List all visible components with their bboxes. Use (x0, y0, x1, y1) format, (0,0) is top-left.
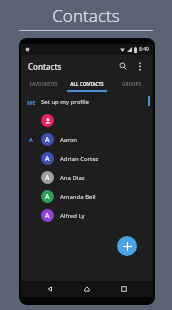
staticText: Contacts (52, 4, 120, 27)
staticText: ALL CONTACTS (70, 81, 104, 87)
staticText: Contacts (28, 61, 62, 72)
staticText: Alfred Ly (60, 212, 85, 220)
staticText: Amanda Bell (60, 193, 96, 201)
staticText: 8:49 (139, 46, 149, 53)
staticText: FAVOURITES (29, 81, 58, 87)
button[interactable]: A (21, 149, 153, 168)
button[interactable]: Back (42, 281, 58, 297)
staticText: A (45, 211, 50, 221)
button[interactable]: FAVOURITES (21, 77, 65, 90)
button[interactable]: GROUPS (109, 77, 153, 90)
button[interactable]: More options (132, 58, 148, 74)
button[interactable]: ALL CONTACTS (65, 77, 109, 90)
button[interactable]: Recent apps (116, 281, 132, 297)
button[interactable]: A (21, 187, 153, 206)
staticText: A (29, 136, 33, 143)
staticText: A (45, 192, 50, 202)
button[interactable]: A (21, 130, 153, 149)
staticText: A (45, 173, 50, 183)
staticText: ME (27, 99, 36, 106)
staticText: GROUPS (122, 81, 141, 87)
button[interactable]: Home (79, 281, 95, 297)
button[interactable]: A (21, 168, 153, 187)
staticText: Adrian Cortez (60, 155, 99, 163)
button[interactable]: ME (21, 93, 153, 111)
button[interactable]: Add contact (117, 236, 137, 256)
staticText: Set up my profile (41, 98, 89, 106)
button[interactable]: A (21, 206, 153, 225)
staticText: Aaron (60, 136, 77, 144)
staticText: A (45, 135, 50, 145)
staticText: A (45, 154, 50, 164)
button[interactable]: Search (115, 58, 131, 74)
staticText: Ana Diaz (60, 174, 85, 182)
button[interactable] (21, 111, 153, 130)
